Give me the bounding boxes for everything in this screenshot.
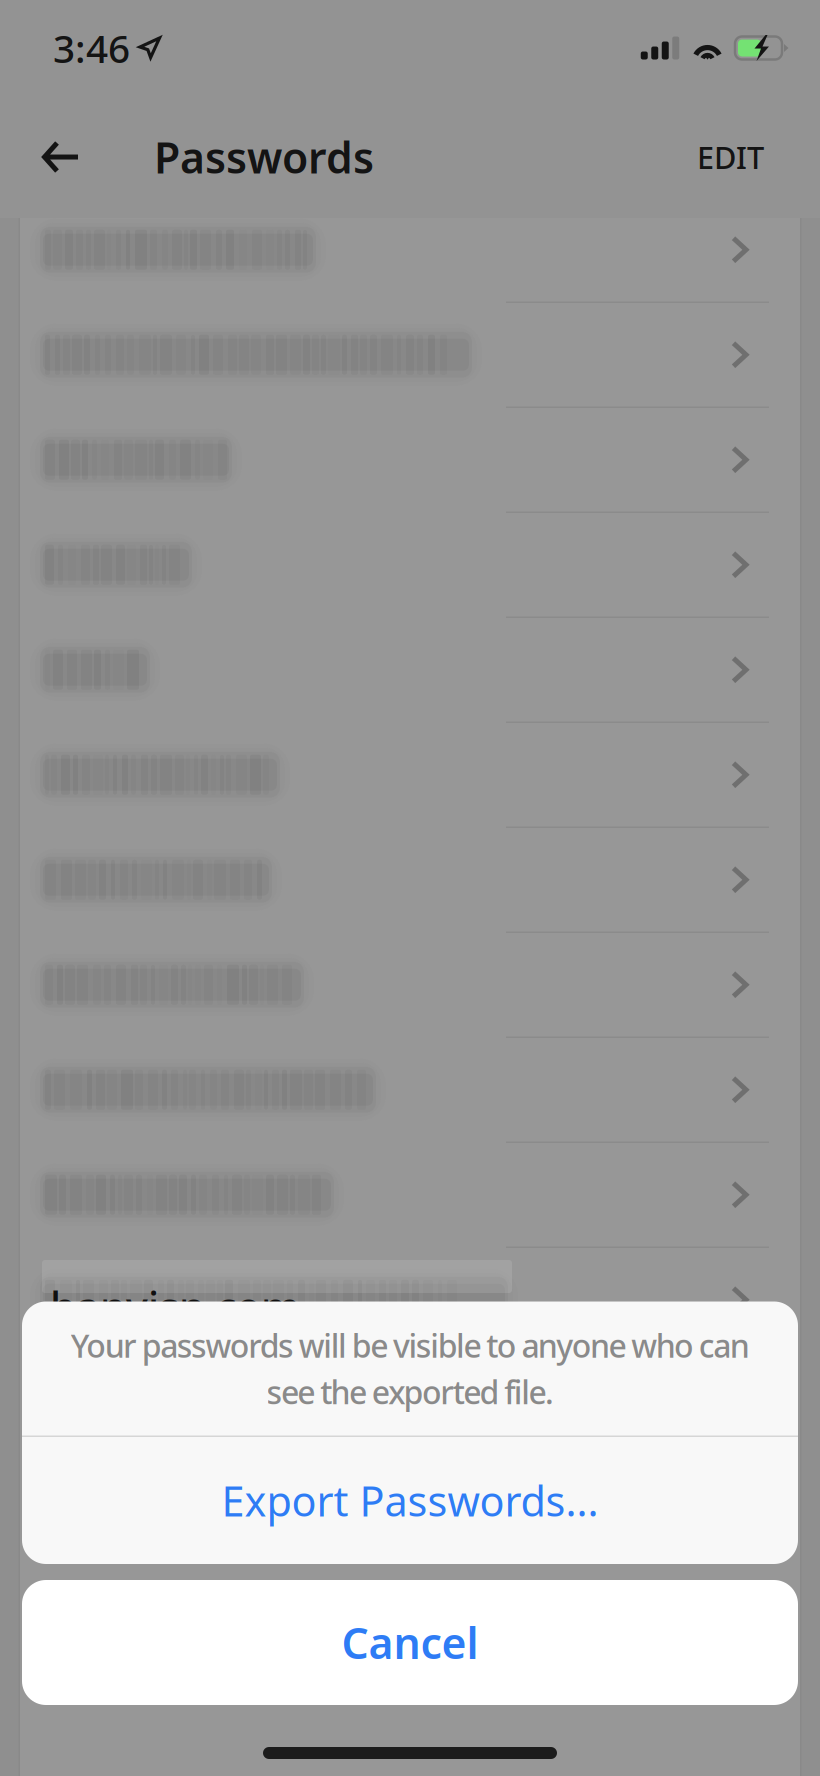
button[interactable]: Back	[0, 118, 98, 196]
staticText: 3:46	[53, 22, 130, 74]
staticText: EDIT	[697, 137, 764, 177]
button[interactable]	[20, 933, 800, 1038]
button[interactable]	[20, 408, 800, 513]
staticText: hanvisn.com	[50, 1279, 300, 1334]
button[interactable]	[20, 1353, 800, 1458]
button[interactable]	[20, 513, 800, 618]
button[interactable]	[20, 723, 800, 828]
staticText: Export Passwords...	[221, 1473, 598, 1528]
button[interactable]: EDIT	[680, 117, 781, 197]
button[interactable]	[20, 828, 800, 933]
button[interactable]	[20, 1038, 800, 1143]
staticText: Passwords	[154, 129, 374, 185]
button[interactable]	[20, 1143, 800, 1248]
staticText: Your passwords will be visible to anyone…	[71, 1324, 749, 1413]
staticText: Cancel	[341, 1614, 478, 1671]
button[interactable]	[20, 618, 800, 723]
button[interactable]: Export Passwords...	[22, 1437, 798, 1564]
button[interactable]	[20, 303, 800, 408]
button[interactable]	[20, 1248, 800, 1353]
button[interactable]	[20, 198, 800, 303]
button[interactable]: Cancel	[22, 1580, 798, 1705]
